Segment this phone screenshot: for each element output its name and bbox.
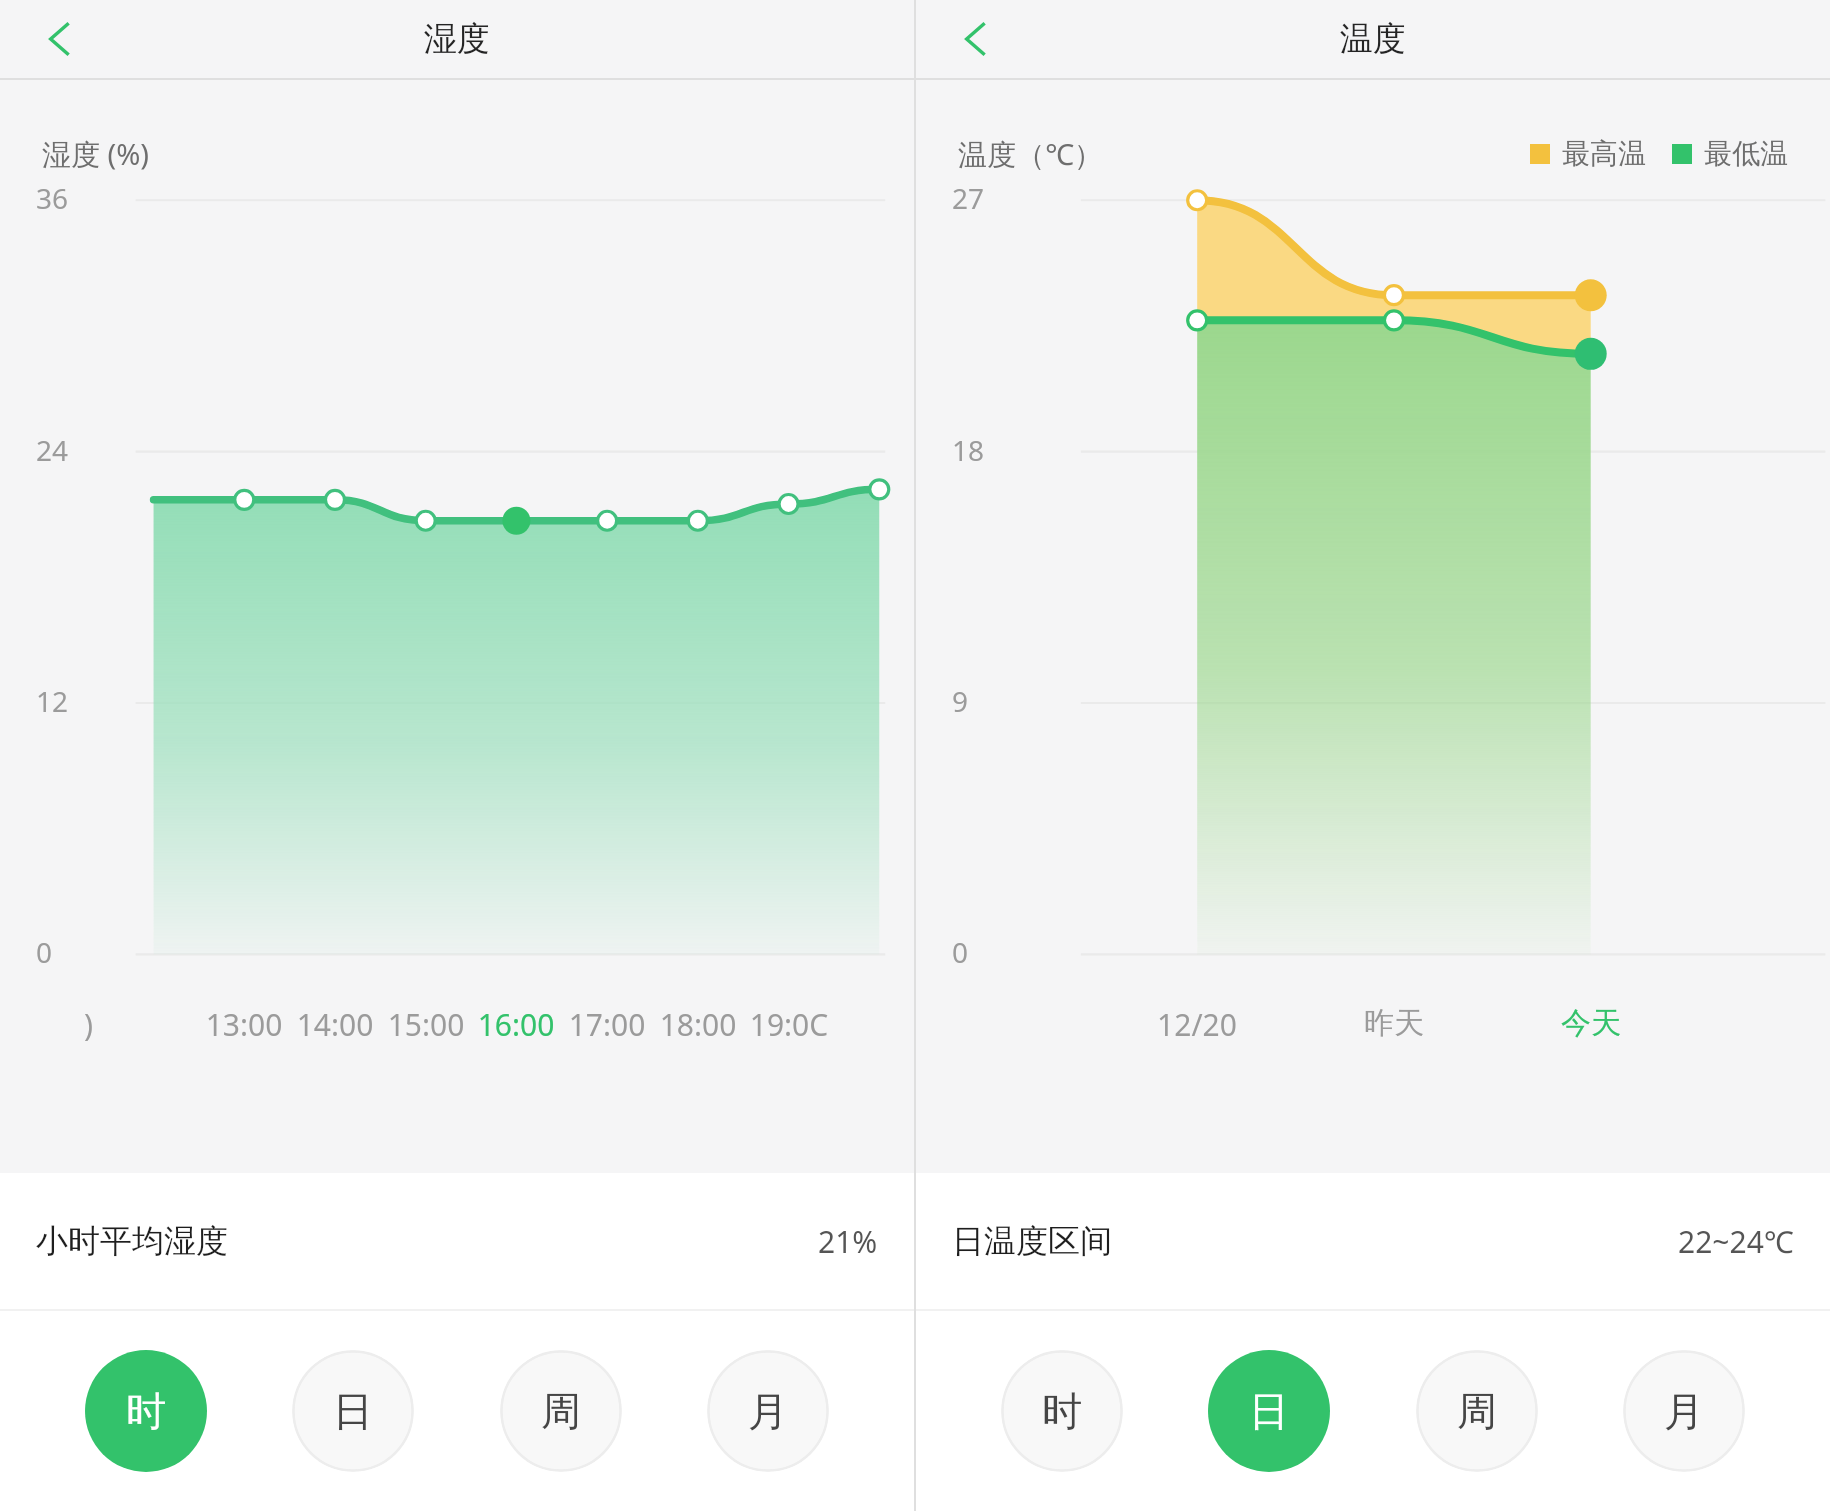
staticText: 最低温 xyxy=(1704,136,1788,171)
staticText: 周 xyxy=(541,1386,581,1436)
button[interactable]: 时 xyxy=(85,1350,207,1472)
button[interactable]: 周 xyxy=(500,1350,622,1472)
staticText: 日温度区间 xyxy=(952,1221,1112,1261)
staticText: 13:00 xyxy=(184,1004,304,1045)
staticText: 9 xyxy=(952,682,969,720)
staticText: 18:00 xyxy=(638,1004,758,1045)
staticText: 月 xyxy=(748,1386,788,1436)
staticText: 15:00 xyxy=(366,1004,486,1045)
button[interactable]: 周 xyxy=(1416,1350,1538,1472)
staticText: 昨天 xyxy=(1324,1004,1464,1042)
staticText: 18 xyxy=(952,431,985,469)
staticText: 0 xyxy=(36,933,53,971)
staticText: 小时平均湿度 xyxy=(36,1221,228,1261)
button[interactable]: Back xyxy=(24,3,96,75)
button[interactable]: 小时平均湿度 xyxy=(0,1173,914,1309)
staticText: 0 xyxy=(952,933,969,971)
staticText: 19:0C xyxy=(729,1004,849,1045)
button[interactable]: 日 xyxy=(1208,1350,1330,1472)
staticText: 今天 xyxy=(1521,1004,1661,1042)
staticText: ) xyxy=(84,1004,93,1045)
button[interactable]: 时 xyxy=(1001,1350,1123,1472)
staticText: 周 xyxy=(1457,1386,1497,1436)
staticText: 月 xyxy=(1664,1386,1704,1436)
button[interactable]: Back xyxy=(940,3,1012,75)
staticText: 17:00 xyxy=(547,1004,667,1045)
staticText: 36 xyxy=(36,179,69,217)
button[interactable]: 日 xyxy=(292,1350,414,1472)
staticText: 温度（℃） xyxy=(958,134,1103,174)
staticText: 21% xyxy=(818,1221,878,1262)
staticText: 14:00 xyxy=(275,1004,395,1045)
staticText: 最高温 xyxy=(1562,136,1646,171)
staticText: 日 xyxy=(1249,1386,1289,1436)
staticText: 27 xyxy=(952,179,985,217)
staticText: 温度 xyxy=(1340,18,1406,60)
staticText: 湿度 (%) xyxy=(42,134,150,174)
staticText: 时 xyxy=(1042,1386,1082,1436)
staticText: 日 xyxy=(333,1386,373,1436)
staticText: 12 xyxy=(36,682,69,720)
staticText: 时 xyxy=(126,1386,166,1436)
staticText: 22~24℃ xyxy=(1678,1221,1794,1262)
staticText: 湿度 xyxy=(424,18,490,60)
button[interactable]: 月 xyxy=(1623,1350,1745,1472)
button[interactable]: 月 xyxy=(707,1350,829,1472)
staticText: 12/20 xyxy=(1127,1004,1267,1045)
button[interactable]: 日温度区间 xyxy=(916,1173,1830,1309)
staticText: 24 xyxy=(36,431,69,469)
staticText: 16:00 xyxy=(456,1004,576,1045)
